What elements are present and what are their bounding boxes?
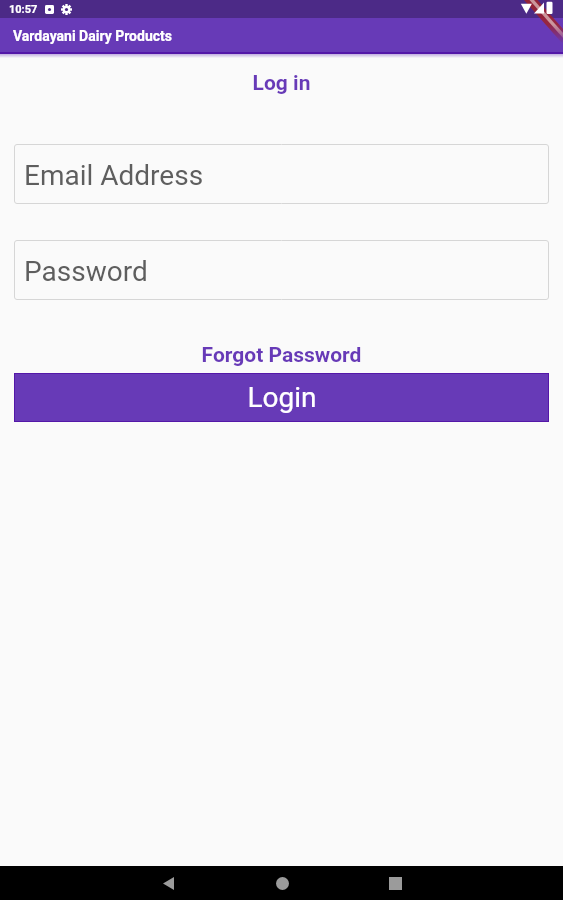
button[interactable]: Back — [140, 866, 196, 900]
staticText: Email Address — [24, 159, 204, 192]
staticText: Login — [247, 381, 317, 414]
button[interactable]: Home — [254, 866, 310, 900]
button[interactable]: Recent apps — [367, 866, 423, 900]
button[interactable]: Password — [14, 240, 549, 300]
staticText: Vardayani Dairy Products — [13, 28, 172, 44]
button[interactable]: Login — [15, 374, 548, 421]
staticText: 10:57 — [9, 3, 38, 16]
button[interactable]: Email Address — [14, 144, 549, 204]
button[interactable]: Forgot Password — [0, 343, 563, 368]
staticText: Password — [24, 255, 148, 288]
staticText: Log in — [0, 71, 563, 96]
